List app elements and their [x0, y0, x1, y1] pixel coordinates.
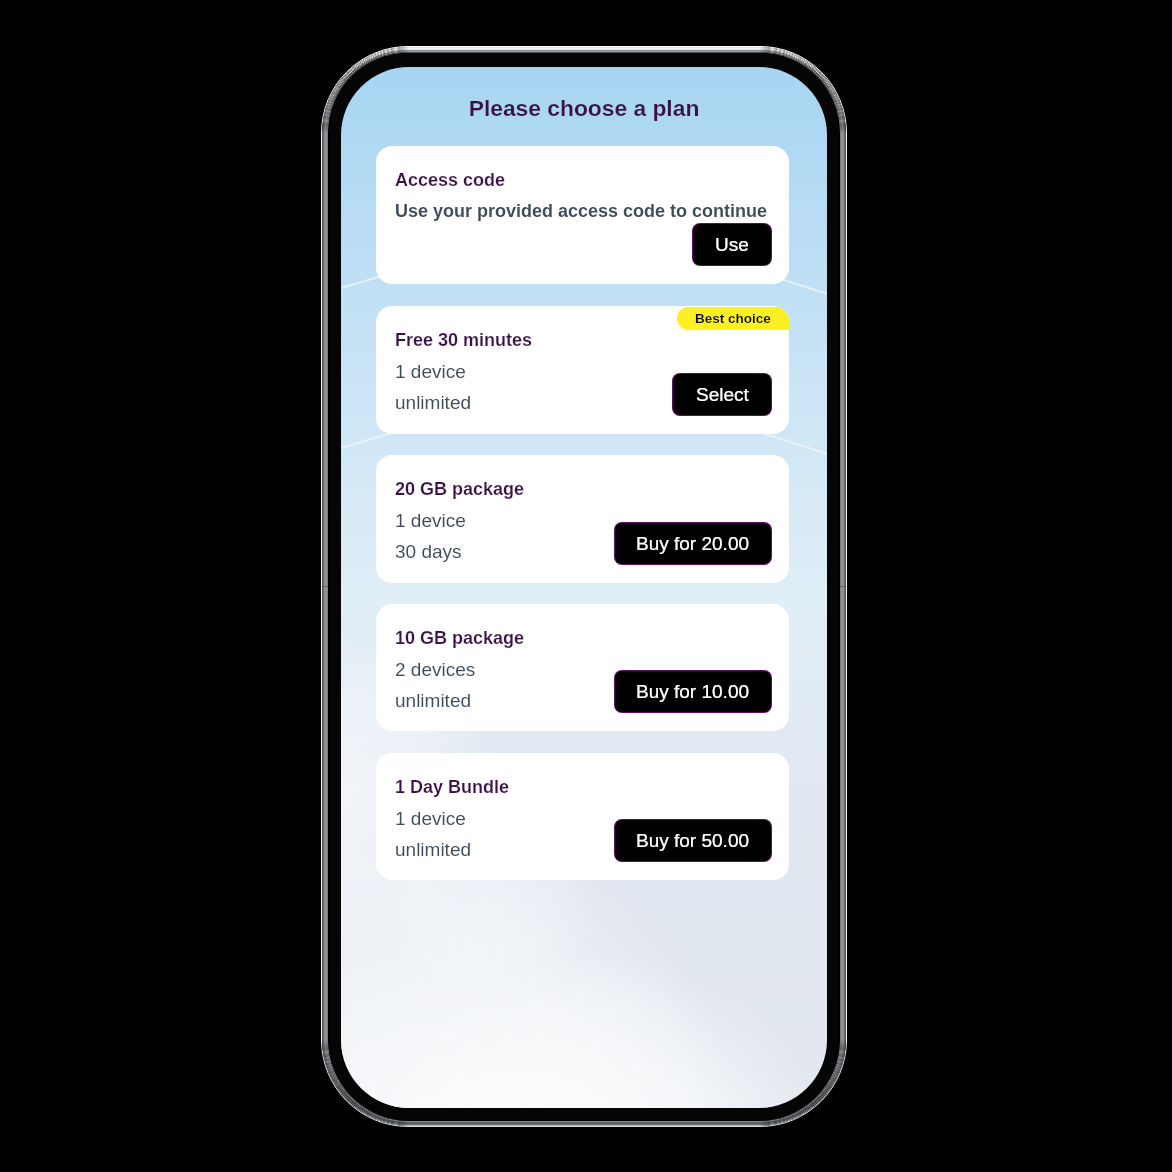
- button[interactable]: 10 GB package: [376, 604, 789, 731]
- staticText: Please choose a plan: [341, 95, 827, 120]
- button[interactable]: 20 GB package: [376, 455, 789, 583]
- button[interactable]: Best choice: [695, 307, 771, 330]
- staticText: 10 GB package: [395, 628, 525, 648]
- staticText: Free 30 minutes: [395, 330, 533, 350]
- staticText: unlimited: [395, 839, 472, 860]
- button[interactable]: 1 Day Bundle: [376, 753, 789, 880]
- staticText: Buy for 50.00: [636, 830, 750, 851]
- staticText: Use: [715, 234, 749, 255]
- staticText: Select: [696, 384, 749, 405]
- staticText: 30 days: [395, 541, 462, 562]
- staticText: Best choice: [695, 311, 771, 326]
- staticText: Buy for 20.00: [636, 533, 750, 554]
- staticText: unlimited: [395, 690, 472, 711]
- button[interactable]: Use: [693, 224, 771, 265]
- button[interactable]: Select: [673, 374, 771, 415]
- staticText: 1 device: [395, 808, 466, 829]
- staticText: unlimited: [395, 392, 472, 413]
- staticText: 1 device: [395, 361, 466, 382]
- button[interactable]: Best choice: [376, 306, 789, 434]
- staticText: Buy for 10.00: [636, 681, 750, 702]
- button[interactable]: Buy for 10.00: [615, 671, 771, 712]
- staticText: 2 devices: [395, 659, 476, 680]
- staticText: Use your provided access code to continu…: [395, 201, 768, 221]
- button[interactable]: Access code: [376, 146, 789, 284]
- staticText: 20 GB package: [395, 479, 525, 499]
- staticText: Access code: [395, 170, 506, 190]
- staticText: 1 Day Bundle: [395, 777, 510, 797]
- staticText: 1 device: [395, 510, 466, 531]
- button[interactable]: Buy for 20.00: [615, 523, 771, 564]
- button[interactable]: Buy for 50.00: [615, 820, 771, 861]
